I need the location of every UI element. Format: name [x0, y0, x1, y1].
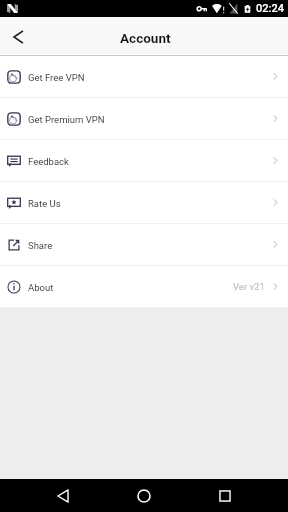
staticText: Rate Us	[28, 198, 61, 209]
button[interactable]: Back	[45, 479, 81, 512]
button[interactable]: Back	[0, 20, 34, 54]
staticText: 02:24	[256, 2, 284, 15]
button[interactable]: Share	[0, 224, 288, 266]
button[interactable]: Get Premium VPN	[0, 98, 288, 140]
staticText: Account	[120, 30, 171, 46]
button[interactable]: Get Free VPN	[0, 56, 288, 98]
staticText: Feedback	[28, 156, 69, 167]
staticText: Share	[28, 240, 53, 251]
button[interactable]: Recent apps	[207, 479, 243, 512]
staticText: Get Premium VPN	[28, 114, 105, 125]
button[interactable]: Home	[126, 479, 162, 512]
staticText: Get Free VPN	[28, 72, 85, 83]
staticText: About	[28, 282, 54, 293]
button[interactable]: About	[0, 266, 288, 308]
staticText: Ver v21	[233, 281, 265, 292]
button[interactable]: Rate Us	[0, 182, 288, 224]
button[interactable]: Feedback	[0, 140, 288, 182]
